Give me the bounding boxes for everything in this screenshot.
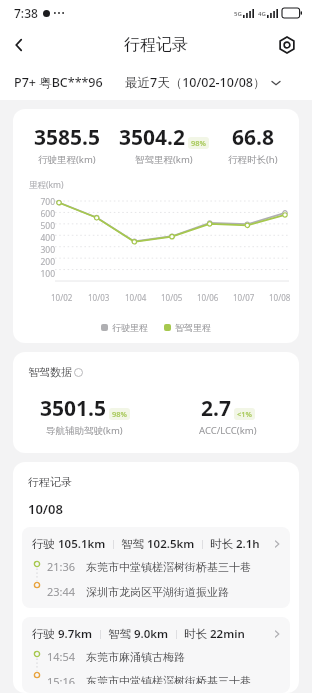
button[interactable]: 最近7天（10/02-10/08） (125, 74, 281, 91)
staticText: 300 (40, 244, 55, 256)
staticText: ACC/LCC(km) (199, 424, 257, 437)
staticText: 3501.5 (40, 394, 106, 423)
staticText: 行程记录 (28, 475, 72, 489)
staticText: 7:38 (14, 5, 38, 21)
staticText: 98% (191, 138, 206, 148)
staticText: P7+ 粤BC***96 (14, 74, 103, 91)
button[interactable]: Settings (270, 28, 304, 62)
staticText: 10/06 (197, 292, 219, 303)
button[interactable]: Back (0, 26, 38, 64)
staticText: 智驾里程 (175, 322, 211, 333)
button[interactable]: 行驶里程 (101, 322, 148, 333)
staticText: 10/08 (269, 292, 291, 303)
staticText: 智驾数据 (28, 365, 72, 379)
staticText: 智驾 102.5km (121, 536, 195, 552)
staticText: 10/04 (125, 292, 147, 303)
button[interactable]: 智驾数据 (28, 365, 83, 379)
staticText: 21:36 (47, 559, 76, 574)
staticText: 东莞市中堂镇槎滘树街桥基三十巷 (86, 674, 251, 684)
staticText: 深圳市龙岗区平湖街道振业路 (86, 585, 229, 599)
staticText: 行驶里程 (112, 322, 148, 333)
staticText: 700 (40, 196, 55, 208)
staticText: 里程(km) (29, 179, 64, 191)
staticText: 行驶 9.7km (32, 626, 93, 642)
staticText: 时长 2.1h (210, 536, 260, 552)
staticText: <1% (237, 409, 252, 419)
button[interactable]: 智驾里程 (164, 322, 211, 333)
staticText: 14:54 (47, 649, 76, 664)
staticText: 时长 22min (184, 626, 245, 642)
staticText: 行程记录 (124, 35, 188, 55)
staticText: 10/07 (233, 292, 255, 303)
staticText: 15:16 (47, 674, 76, 684)
button[interactable]: P7+ 粤BC***96 (14, 74, 103, 91)
staticText: 导航辅助驾驶(km) (46, 424, 123, 437)
staticText: 400 (40, 232, 55, 244)
staticText: 98% (112, 409, 127, 419)
staticText: 600 (40, 208, 55, 220)
staticText: 行驶 105.1km (32, 536, 106, 552)
staticText: 2.7 (201, 394, 231, 423)
staticText: 行程时长(h) (228, 153, 278, 166)
staticText: 10/05 (161, 292, 183, 303)
staticText: 10/08 (28, 500, 63, 518)
staticText: 200 (40, 256, 55, 268)
button[interactable]: 行驶 105.1km (22, 527, 290, 608)
staticText: 3585.5 (34, 123, 100, 152)
staticText: 最近7天（10/02-10/08） (125, 74, 266, 91)
staticText: 智驾 9.0km (108, 626, 169, 642)
staticText: 100 (40, 268, 55, 280)
staticText: 10/03 (88, 292, 110, 303)
button[interactable]: 行驶 9.7km (22, 617, 290, 693)
staticText: 3504.2 (119, 123, 185, 152)
staticText: 东莞市中堂镇槎滘树街桥基三十巷 (86, 560, 251, 574)
staticText: 500 (40, 220, 55, 232)
staticText: 行驶里程(km) (38, 153, 96, 166)
staticText: 23:44 (47, 584, 76, 599)
staticText: 4G (258, 10, 266, 18)
staticText: 5G (234, 10, 242, 18)
staticText: 10/02 (51, 292, 73, 303)
staticText: 智驾里程(km) (135, 153, 193, 166)
staticText: 东莞市麻涌镇古梅路 (86, 650, 185, 664)
staticText: 66.8 (232, 123, 274, 152)
